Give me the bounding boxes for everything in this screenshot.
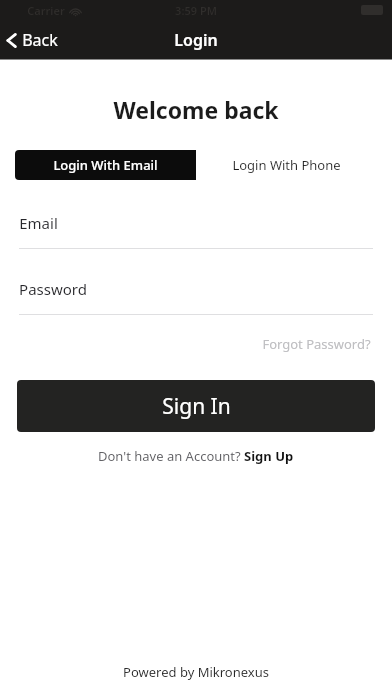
staticText: Login With Email	[53, 156, 158, 174]
button[interactable]: Back	[0, 23, 68, 57]
staticText: Email	[19, 213, 58, 233]
staticText: Login	[174, 29, 218, 51]
staticText: Back	[22, 29, 58, 51]
staticText: 3:59 PM	[175, 3, 217, 18]
button[interactable]: Sign In	[17, 380, 375, 432]
staticText: Login With Phone	[232, 156, 341, 174]
button[interactable]: Login With Email	[15, 150, 196, 180]
button[interactable]: Login With Phone	[196, 150, 377, 180]
button[interactable]: Forgot Password?	[262, 333, 392, 355]
button[interactable]: Email	[19, 210, 373, 249]
staticText: Welcome back	[113, 94, 279, 125]
staticText: Password	[19, 279, 87, 299]
other: Back	[5, 31, 18, 50]
button[interactable]: Password	[19, 276, 373, 315]
button[interactable]: Don't have an Account? Sign Up	[94, 443, 298, 469]
staticText: Sign In	[162, 392, 231, 421]
staticText: Powered by Mikronexus	[123, 663, 269, 681]
staticText: Don't have an Account? Sign Up	[98, 447, 294, 465]
staticText: Forgot Password?	[262, 335, 371, 353]
staticText: Carrier	[27, 3, 65, 18]
